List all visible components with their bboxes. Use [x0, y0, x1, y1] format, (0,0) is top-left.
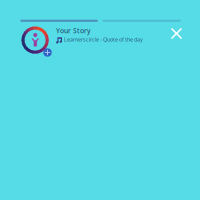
staticText: Your Story [56, 26, 91, 35]
staticText: Learnerscircle - Quote of the day [64, 36, 143, 43]
button[interactable]: Your story avatar [21, 26, 50, 55]
button[interactable]: Your Story [56, 27, 143, 43]
button[interactable]: Close [165, 22, 187, 44]
